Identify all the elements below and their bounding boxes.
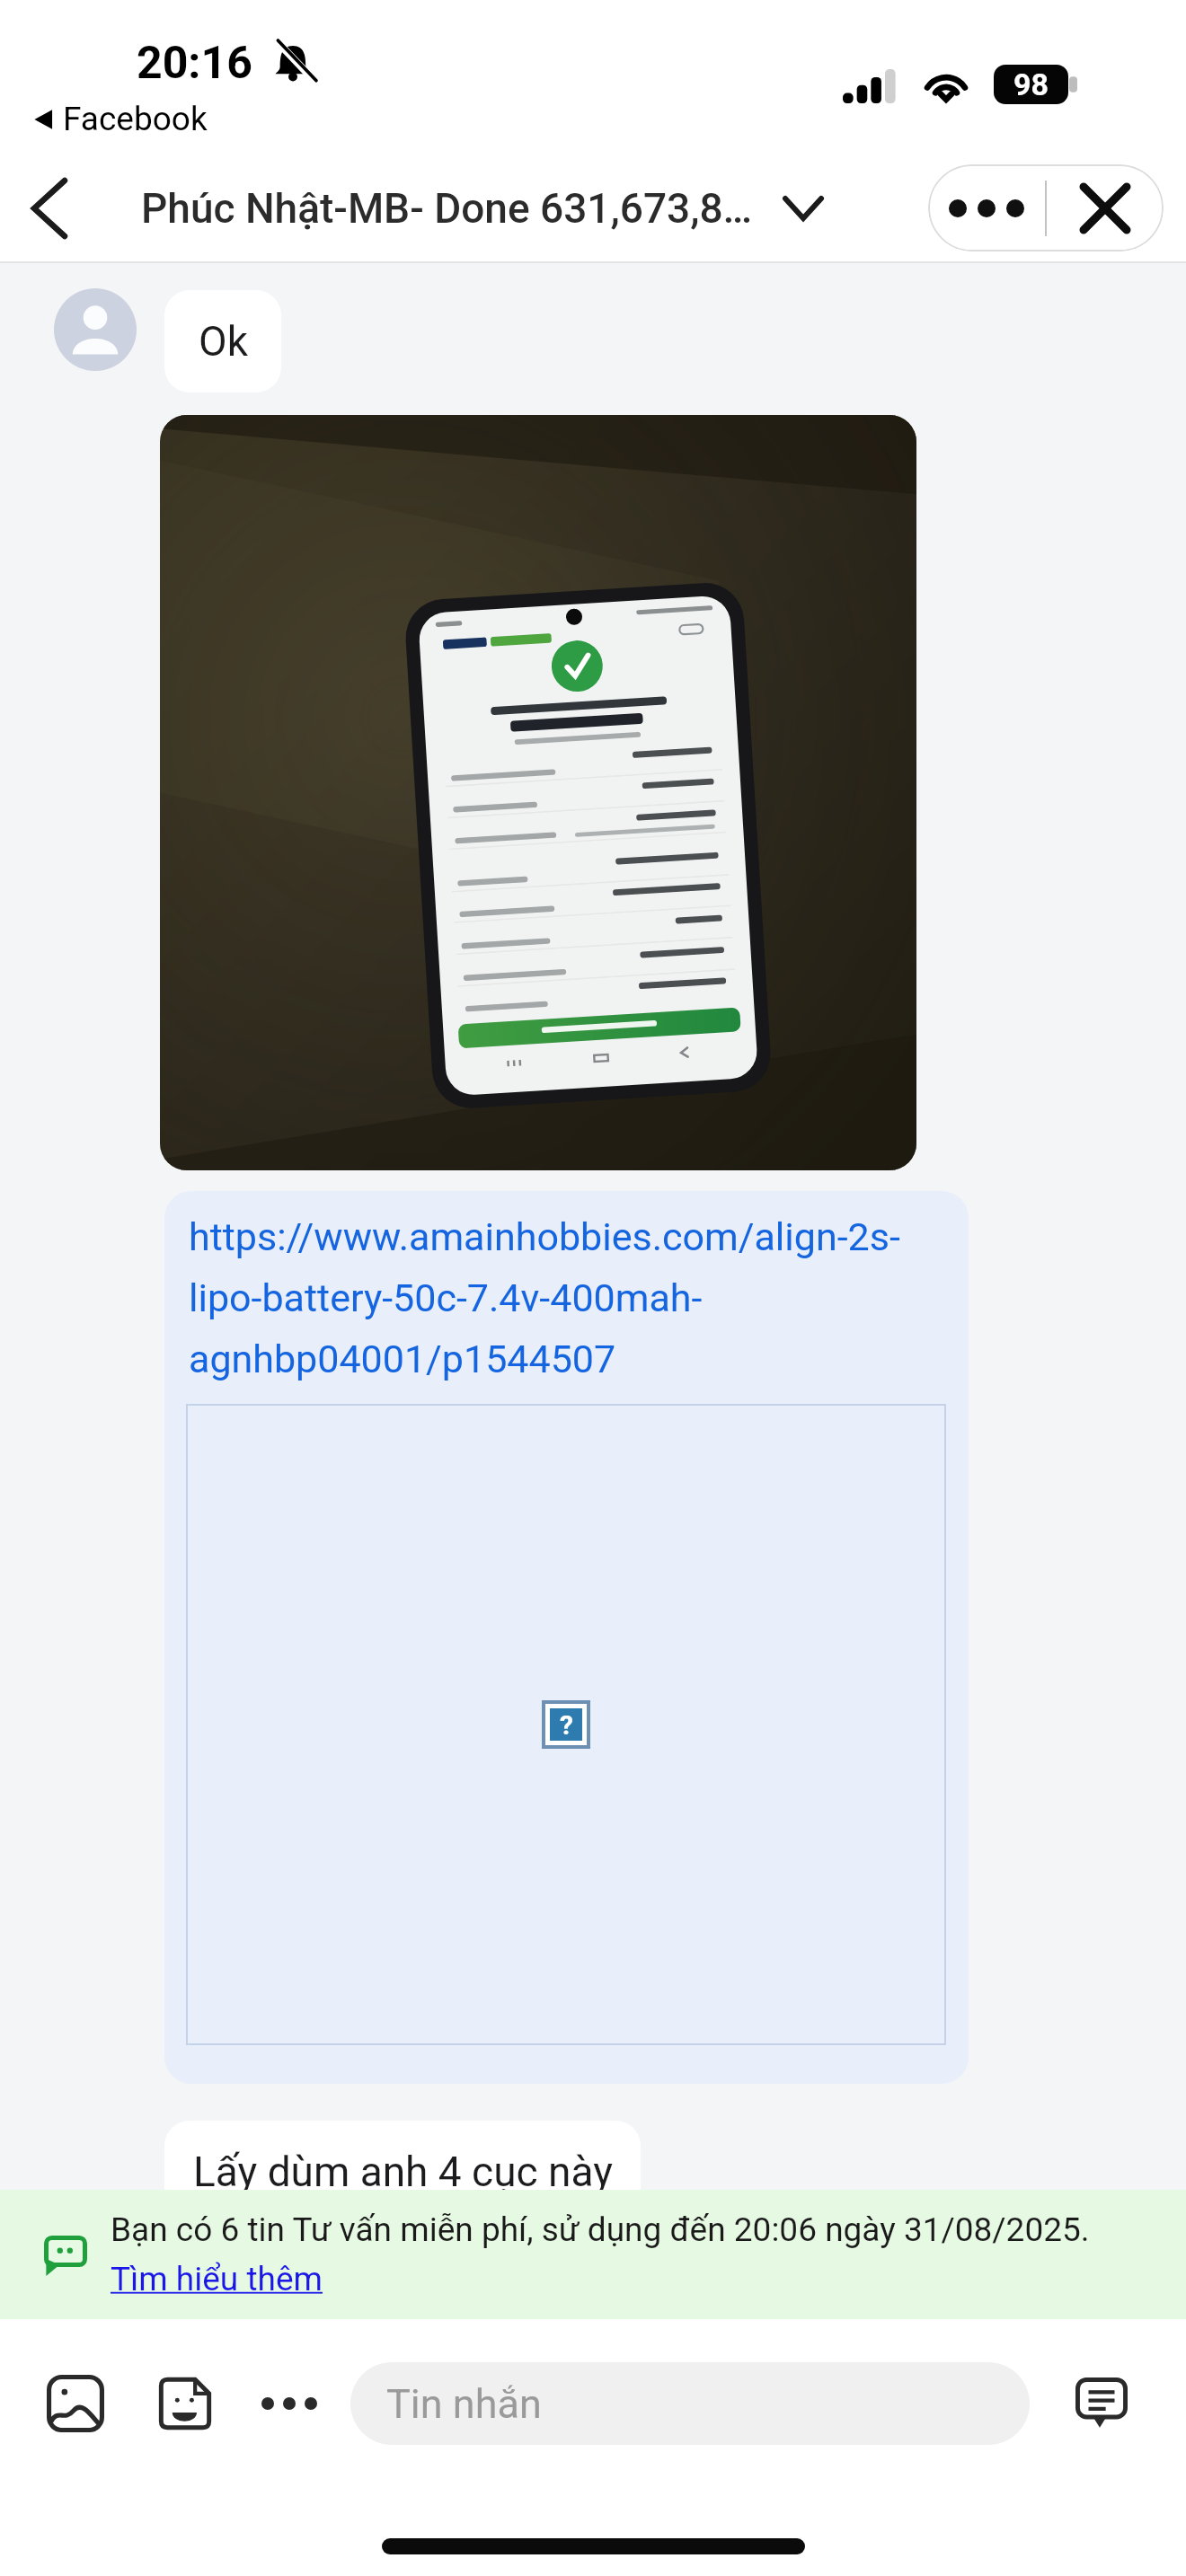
staticText: Ok — [199, 317, 248, 366]
staticText: https://www.amainhobbies.com/align-2s- l… — [189, 1214, 969, 1381]
button[interactable]: Quick replies — [1058, 2360, 1145, 2447]
button[interactable]: https://www.amainhobbies.com/align-2s- l… — [164, 1191, 969, 2084]
staticText: ? — [560, 1709, 573, 1741]
button[interactable]: Close — [1047, 164, 1164, 251]
button[interactable]: Tin nhắn — [350, 2362, 1030, 2445]
button[interactable]: Back — [0, 154, 99, 261]
staticText: Tin nhắn — [386, 2380, 542, 2428]
button[interactable]: Stickers — [142, 2360, 228, 2447]
button[interactable]: Tìm hiểu thêm — [111, 2260, 323, 2298]
button[interactable]: Send photo — [32, 2360, 119, 2447]
staticText: Facebook — [63, 100, 208, 138]
button[interactable]: Phúc Nhật-MB- Done 631,673,8… — [141, 184, 753, 233]
button[interactable]: More options — [928, 164, 1045, 251]
staticText: Lấy dùm anh 4 cục này — [193, 2148, 613, 2196]
button[interactable]: Photo attachment — [160, 415, 916, 1170]
button[interactable]: Ok — [164, 290, 281, 393]
staticText: 20:16 — [137, 37, 252, 90]
staticText: 98 — [1013, 66, 1049, 102]
button[interactable]: Show conversation info — [767, 154, 839, 261]
button[interactable]: More actions — [246, 2360, 332, 2447]
button[interactable]: Bạn có 6 tin Tư vấn miễn phí, sử dụng đế… — [0, 2190, 1186, 2319]
staticText: Bạn có 6 tin Tư vấn miễn phí, sử dụng đế… — [111, 2210, 1090, 2249]
button[interactable]: Lấy dùm anh 4 cục này — [164, 2121, 641, 2223]
